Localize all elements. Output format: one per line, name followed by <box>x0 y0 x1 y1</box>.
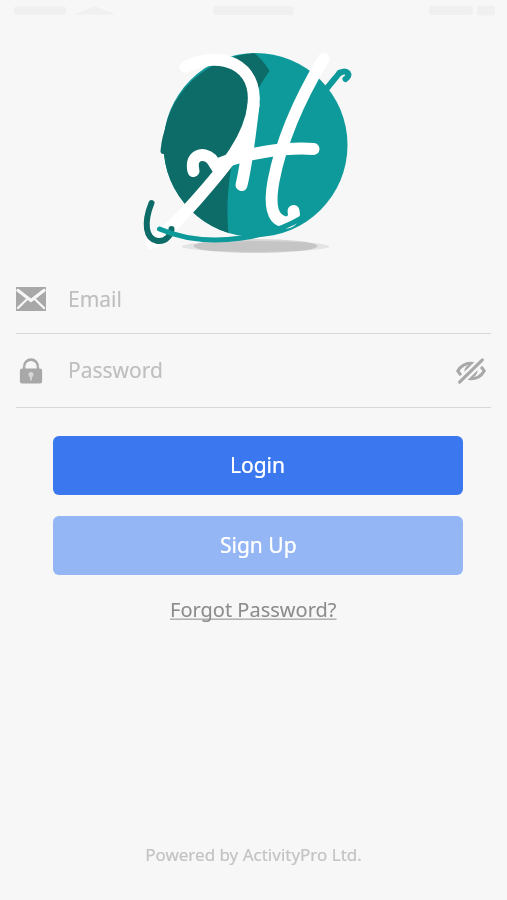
staticText: Password <box>68 356 163 385</box>
staticText: Forgot Password? <box>170 596 337 623</box>
button[interactable]: Email <box>0 265 507 333</box>
button[interactable]: Show password <box>451 351 491 391</box>
button[interactable]: Sign Up <box>53 516 463 575</box>
staticText: Login <box>230 451 286 480</box>
button[interactable]: Login <box>53 436 463 495</box>
button[interactable]: Forgot Password? <box>162 592 345 627</box>
staticText: Email <box>68 285 122 314</box>
staticText: Powered by ActivityPro Ltd. <box>145 843 362 866</box>
button[interactable]: Password <box>0 334 507 407</box>
staticText: Sign Up <box>220 531 297 560</box>
